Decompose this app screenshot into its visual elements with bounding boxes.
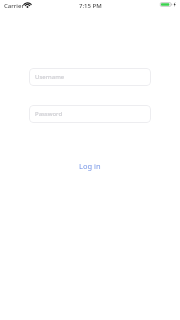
other: Battery charging <box>160 2 177 7</box>
button[interactable]: Username <box>29 68 151 86</box>
staticText: Username <box>35 73 65 81</box>
staticText: Password <box>35 110 63 118</box>
other: Wi-Fi signal <box>24 2 31 8</box>
staticText: Carrier <box>4 2 24 10</box>
staticText: 7:15 PM <box>79 2 102 10</box>
staticText: Log in <box>79 161 101 171</box>
button[interactable]: Log in <box>0 158 180 173</box>
button[interactable]: Password <box>29 105 151 123</box>
